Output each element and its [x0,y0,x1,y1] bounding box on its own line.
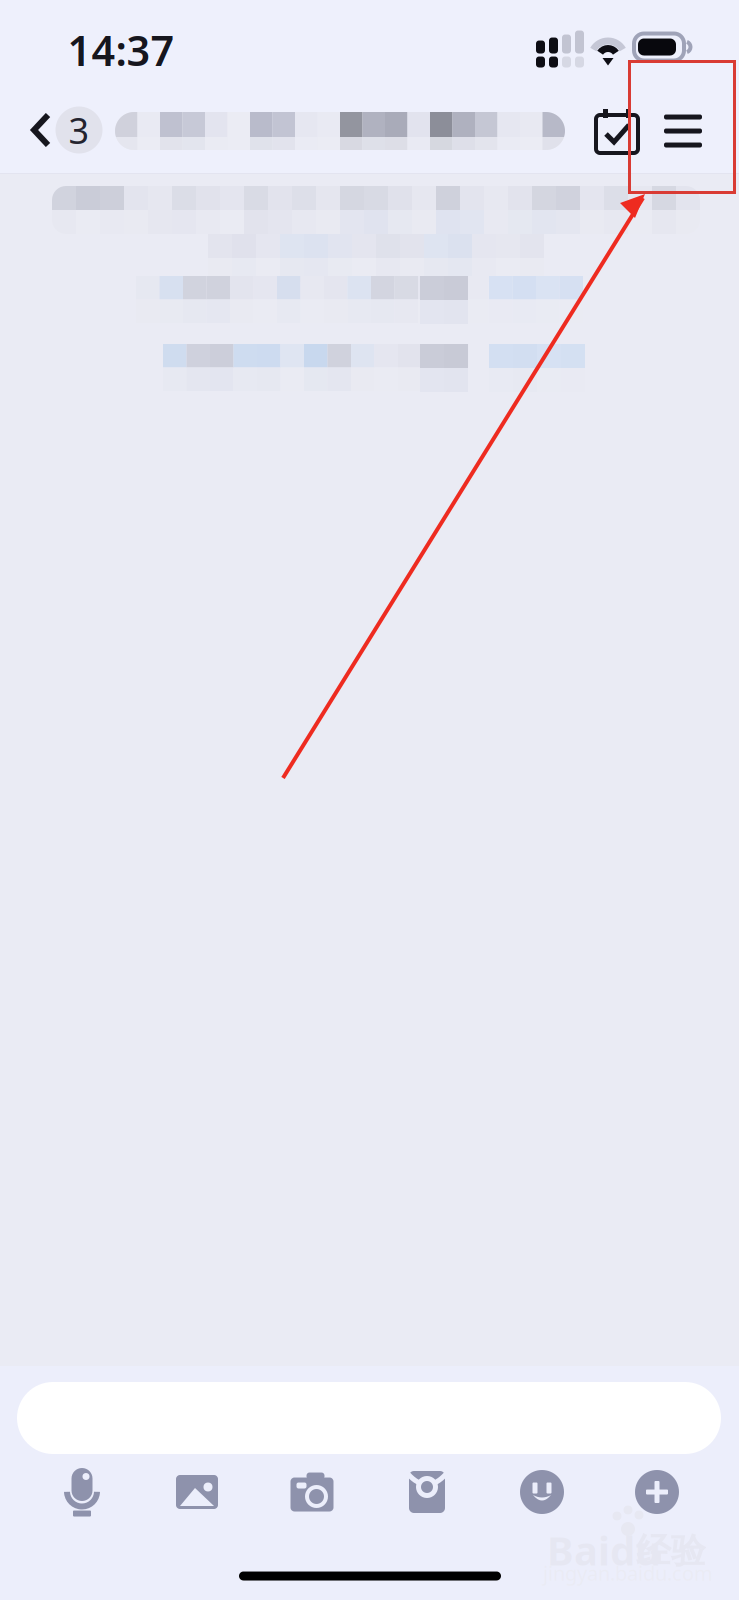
button[interactable]: More options [622,1461,692,1523]
staticText: 3 [68,106,89,154]
staticText: Baidu [547,1523,661,1576]
button[interactable]: More [652,100,714,162]
staticText: 经验 [636,1530,706,1572]
button[interactable]: Stickers [507,1461,577,1523]
button[interactable]: Tasks [586,100,648,162]
staticText: 14:37 [67,23,174,77]
button[interactable]: Red packet [392,1461,462,1523]
button[interactable]: Camera [277,1461,347,1523]
staticText: jingyan.baidu.com [543,1560,713,1586]
button[interactable]: Back, 3 unread [0,99,104,161]
button[interactable]: Voice message [47,1461,117,1523]
button[interactable]: Photos [162,1461,232,1523]
